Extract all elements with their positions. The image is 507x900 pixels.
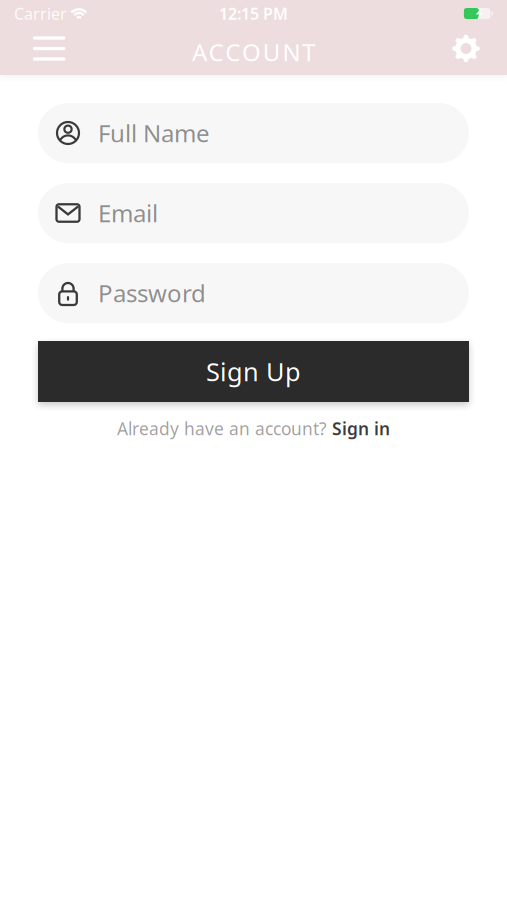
- button[interactable]: Settings: [448, 30, 484, 66]
- button[interactable]: Sign in: [332, 417, 390, 440]
- staticText: Carrier: [14, 3, 67, 24]
- staticText: O: [242, 36, 261, 68]
- staticText: U: [263, 36, 281, 68]
- staticText: 12:15 PM: [219, 3, 288, 24]
- staticText: Already have an account?: [117, 417, 327, 440]
- staticText: Email: [98, 197, 158, 229]
- button[interactable]: Menu: [33, 36, 65, 61]
- button[interactable]: Sign Up: [38, 341, 469, 402]
- staticText: Sign Up: [206, 355, 301, 388]
- staticText: Sign in: [332, 417, 390, 440]
- staticText: C: [225, 36, 240, 68]
- button[interactable]: Password: [38, 263, 469, 323]
- staticText: A: [192, 36, 207, 68]
- staticText: C: [209, 36, 224, 68]
- button[interactable]: Full Name: [38, 103, 469, 163]
- staticText: Full Name: [98, 117, 210, 149]
- staticText: N: [282, 36, 300, 68]
- staticText: Password: [98, 277, 206, 309]
- staticText: T: [302, 36, 315, 68]
- button[interactable]: Email: [38, 183, 469, 243]
